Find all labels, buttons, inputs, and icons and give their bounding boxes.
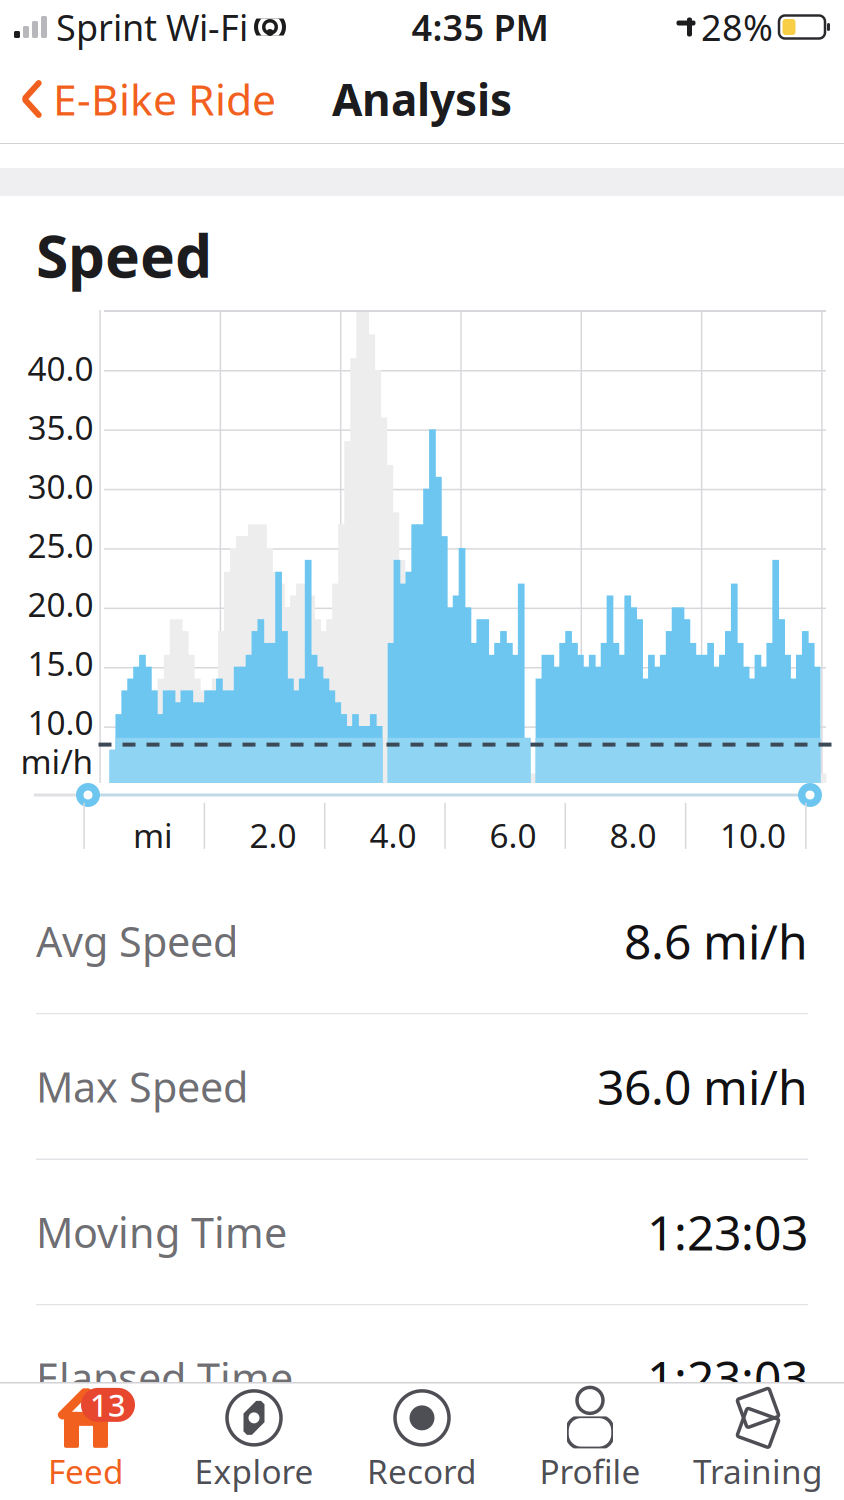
staticText: 1:23:03 [647,1346,808,1409]
staticText: 28% [701,3,773,51]
staticText: Record [367,1449,477,1493]
staticText: Elapsed Time [36,1350,293,1405]
staticText: 13 [90,1384,126,1425]
staticText: 4:35 PM [411,3,548,51]
staticText: 40.0 [27,346,93,390]
staticText: E-Bike Ride [53,71,276,127]
staticText: Sprint Wi-Fi [56,3,248,51]
staticText: 2.0 [249,813,296,857]
staticText: 30.0 [27,464,93,508]
staticText: Moving Time [36,1205,287,1259]
staticText: Analysis [332,70,512,128]
button[interactable]: Training [674,1382,842,1500]
staticText: 1:23:03 [647,1200,808,1264]
button[interactable]: Feed [2,1382,170,1500]
staticText: 8.0 [609,813,656,857]
staticText: 4.0 [369,813,416,857]
staticText: 36.0 mi/h [597,1055,808,1118]
staticText: Speed [36,216,212,294]
staticText: Avg Speed [36,914,238,968]
staticText: Profile [539,1449,640,1493]
staticText: 10.0 [720,813,786,857]
button[interactable]: Elapsed Time [0,1305,844,1449]
button[interactable]: Explore [170,1382,338,1500]
staticText: Max Speed [36,1059,248,1114]
button[interactable]: Profile [506,1382,674,1500]
staticText: mi/h [20,739,93,783]
staticText: Training [693,1449,823,1493]
staticText: 15.0 [27,641,93,685]
staticText: 8.6 mi/h [624,909,808,973]
button[interactable]: Record [338,1382,506,1500]
button[interactable]: Moving Time [0,1160,844,1305]
button[interactable]: Max Speed [0,1014,844,1160]
staticText: 20.0 [27,582,93,626]
staticText: Feed [48,1449,124,1493]
staticText: 6.0 [489,813,536,857]
staticText: Explore [194,1449,313,1493]
staticText: mi [133,813,173,857]
staticText: 35.0 [27,405,93,449]
staticText: 25.0 [27,523,93,567]
button[interactable]: Avg Speed [0,869,844,1014]
button[interactable]: E-Bike Ride [0,61,276,137]
staticText: 10.0 [27,700,93,744]
